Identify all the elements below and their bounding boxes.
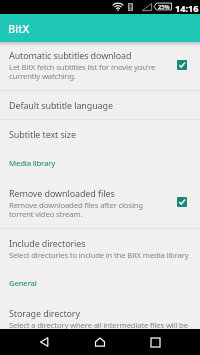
staticText: Select a directory where all intermediat… xyxy=(9,320,194,339)
button[interactable]: Home xyxy=(82,329,118,355)
button[interactable]: Include directories xyxy=(0,233,200,268)
staticText: Let BitX fetch subtitles list for movie … xyxy=(9,62,167,81)
staticText: Subtitle text size xyxy=(9,128,76,140)
button[interactable]: Toggle Remove downloaded files xyxy=(177,197,187,207)
button[interactable]: Automatic subtitles download xyxy=(0,43,200,90)
button[interactable]: Back xyxy=(27,329,63,355)
staticText: Automatic subtitles download xyxy=(9,49,132,61)
button[interactable]: Toggle Automatic subtitles download xyxy=(177,60,187,70)
staticText: 25% xyxy=(158,3,170,11)
staticText: Include directories xyxy=(9,237,86,249)
button[interactable]: Subtitle text size xyxy=(0,120,200,148)
staticText: Media library xyxy=(9,158,56,169)
staticText: Remove downloaded files xyxy=(9,187,115,199)
staticText: 14:16 xyxy=(175,2,199,15)
staticText: Default subtitle language xyxy=(9,99,113,111)
button[interactable]: Storage directory xyxy=(0,303,200,347)
button[interactable]: Default subtitle language xyxy=(0,91,200,119)
button[interactable]: Remove downloaded files xyxy=(0,183,200,228)
button[interactable]: Recent apps xyxy=(137,329,173,355)
staticText: Remove downloaded files after closing to… xyxy=(9,200,167,219)
staticText: BitX xyxy=(8,21,30,36)
staticText: Storage directory xyxy=(9,307,80,319)
staticText: Select directories to include in the Bit… xyxy=(9,250,189,261)
staticText: General xyxy=(9,278,37,289)
